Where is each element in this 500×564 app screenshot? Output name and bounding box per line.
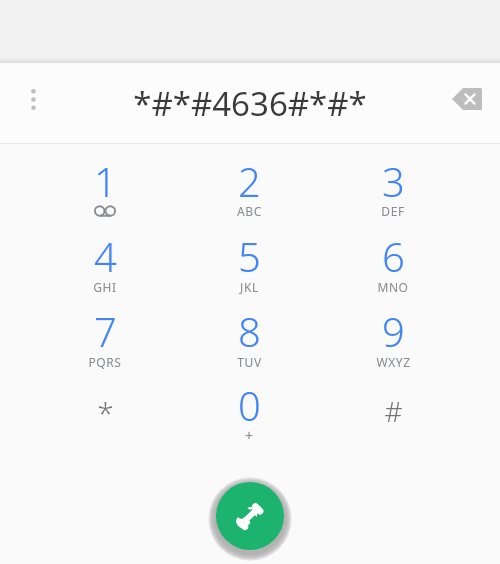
staticText: PQRS xyxy=(88,354,122,370)
staticText: + xyxy=(245,426,254,445)
button[interactable]: Delete xyxy=(443,75,491,123)
staticText: MNO xyxy=(377,279,409,295)
staticText: *#*#4636#*#* xyxy=(133,81,367,126)
button[interactable]: 8 xyxy=(177,301,321,376)
button[interactable]: 6 xyxy=(321,226,465,301)
button[interactable]: * xyxy=(33,376,177,451)
staticText: 5 xyxy=(238,229,261,283)
staticText: 0 xyxy=(238,378,261,432)
button[interactable]: 7 xyxy=(33,301,177,376)
button[interactable]: # xyxy=(321,376,465,451)
staticText: # xyxy=(384,392,403,430)
staticText: 7 xyxy=(94,304,117,358)
staticText: WXYZ xyxy=(376,354,411,370)
button[interactable]: 1 xyxy=(33,152,177,226)
staticText: * xyxy=(97,392,114,433)
staticText: 9 xyxy=(382,304,405,358)
button[interactable]: More options xyxy=(9,75,57,123)
button[interactable]: 9 xyxy=(321,301,465,376)
staticText: DEF xyxy=(381,203,405,219)
staticText: 4 xyxy=(94,229,117,283)
button[interactable]: 0 xyxy=(177,376,321,451)
staticText: 2 xyxy=(238,154,261,208)
staticText: TUV xyxy=(237,354,262,370)
button[interactable]: 5 xyxy=(177,226,321,301)
staticText: JKL xyxy=(240,279,259,295)
staticText: 3 xyxy=(382,154,405,208)
staticText: 1 xyxy=(94,154,117,208)
button[interactable]: 4 xyxy=(33,226,177,301)
staticText: ABC xyxy=(237,203,262,219)
button[interactable]: 2 xyxy=(177,152,321,226)
button[interactable]: 3 xyxy=(321,152,465,226)
staticText: 8 xyxy=(238,304,261,358)
button[interactable]: Call xyxy=(216,482,284,550)
staticText: GHI xyxy=(93,279,117,295)
staticText: 6 xyxy=(382,229,405,283)
